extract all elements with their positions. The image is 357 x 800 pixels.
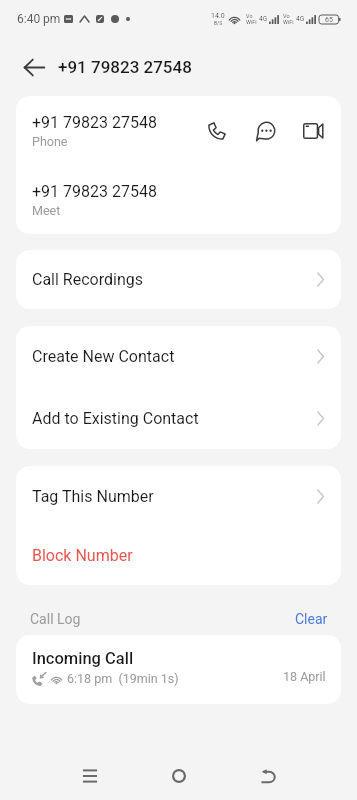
staticText: Clear [295, 611, 328, 627]
staticText: WiFi [283, 19, 294, 25]
button[interactable]: +91 79823 27548 [16, 96, 341, 165]
staticText: Create New Contact [32, 347, 175, 366]
staticText: +91 79823 27548 [32, 182, 157, 201]
button[interactable]: Create New Contact [16, 326, 341, 387]
staticText: Add to Existing Contact [32, 409, 199, 428]
button[interactable]: Block Number [16, 526, 341, 585]
staticText: 4G [259, 15, 268, 23]
staticText: 18 April [283, 669, 326, 684]
staticText: Meet [32, 203, 61, 218]
staticText: Incoming Call [32, 649, 134, 668]
staticText: Vo [246, 13, 253, 19]
staticText: +91 79823 27548 [58, 57, 192, 77]
button[interactable]: Message [250, 116, 280, 146]
staticText: Call Log [30, 611, 81, 627]
staticText: 14.0 [211, 12, 225, 20]
staticText: Call Recordings [32, 270, 143, 289]
staticText: B/S [214, 20, 223, 26]
button[interactable]: Video call [298, 116, 328, 146]
button[interactable]: Add to Existing Contact [16, 387, 341, 449]
staticText: 6:40 pm [17, 12, 61, 26]
button[interactable]: Home [151, 756, 207, 796]
button[interactable]: Recent apps [62, 756, 118, 796]
button[interactable]: Call [202, 116, 232, 146]
button[interactable]: Incoming Call [16, 635, 341, 704]
button[interactable]: Back [14, 47, 54, 87]
staticText: 4G [296, 15, 305, 23]
staticText: +91 79823 27548 [32, 113, 157, 132]
staticText: Phone [32, 134, 68, 149]
staticText: WiFi [246, 19, 257, 25]
button[interactable]: Call Recordings [16, 250, 341, 309]
staticText: Tag This Number [32, 487, 154, 506]
button[interactable]: +91 79823 27548 [16, 165, 341, 234]
staticText: Block Number [32, 546, 133, 565]
staticText: 6:18 pm (19min 1s) [67, 671, 179, 686]
button[interactable]: Tag This Number [16, 466, 341, 526]
staticText: Vo [283, 13, 290, 19]
button[interactable]: Back [240, 756, 296, 796]
button[interactable]: Clear [295, 611, 328, 627]
staticText: 65 [325, 16, 333, 24]
